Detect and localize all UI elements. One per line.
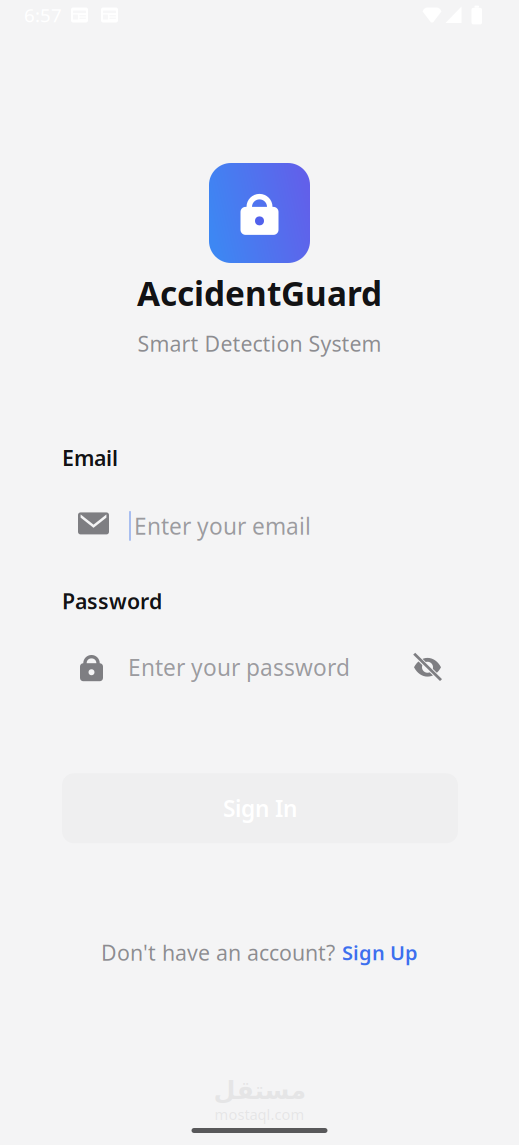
- staticText: 6:57: [24, 3, 62, 27]
- staticText: Don't have an account?: [101, 938, 335, 967]
- button[interactable]: Don't have an account?: [101, 938, 418, 967]
- staticText: Smart Detection System: [137, 329, 381, 358]
- staticText: mostaql.com: [214, 1104, 304, 1124]
- staticText: Enter your email: [134, 511, 311, 541]
- staticText: Sign In: [223, 793, 297, 823]
- staticText: Sign Up: [342, 939, 418, 966]
- staticText: AccidentGuard: [137, 271, 382, 315]
- button[interactable]: Show password: [413, 652, 442, 683]
- staticText: Enter your password: [128, 652, 350, 682]
- staticText: مستقل: [213, 1076, 306, 1105]
- staticText: Password: [62, 587, 162, 615]
- staticText: Email: [62, 444, 118, 472]
